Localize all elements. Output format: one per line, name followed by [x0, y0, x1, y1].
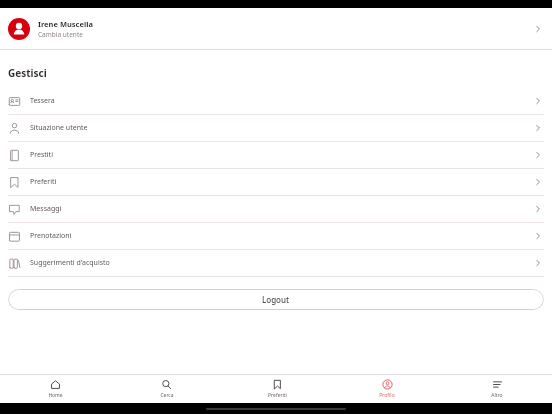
staticText: Preferiti: [30, 177, 57, 187]
other: Apri: [532, 95, 544, 107]
button[interactable]: Prestiti: [0, 142, 552, 168]
button[interactable]: Suggerimenti d'acquisto: [0, 250, 552, 276]
staticText: Prenotazioni: [30, 231, 72, 241]
staticText: Cambia utente: [38, 30, 83, 39]
button[interactable]: Situazione utente: [0, 115, 552, 141]
other: Apri: [532, 149, 544, 161]
other: Apri: [532, 230, 544, 242]
staticText: Cerca: [160, 392, 174, 399]
staticText: Profilo: [379, 392, 395, 399]
staticText: Gestisci: [8, 66, 47, 80]
button[interactable]: Prenotazioni: [0, 223, 552, 249]
staticText: Irene Muscella: [38, 19, 93, 29]
staticText: Tessera: [30, 96, 55, 106]
button[interactable]: Messaggi: [0, 196, 552, 222]
staticText: Altro: [491, 392, 503, 399]
button[interactable]: Profilo: [332, 375, 442, 403]
other: Apri: [532, 23, 544, 35]
button[interactable]: Logout: [8, 289, 544, 310]
staticText: Suggerimenti d'acquisto: [30, 258, 110, 268]
button[interactable]: Irene Muscella: [0, 8, 552, 49]
button[interactable]: Home: [0, 375, 111, 403]
button[interactable]: Preferiti: [222, 375, 332, 403]
other: Apri: [532, 176, 544, 188]
other: Apri: [532, 257, 544, 269]
other: Apri: [532, 203, 544, 215]
other: Apri: [532, 122, 544, 134]
staticText: Messaggi: [30, 204, 62, 214]
button[interactable]: Tessera: [0, 88, 552, 114]
staticText: Preferiti: [268, 392, 287, 399]
staticText: Logout: [262, 294, 290, 305]
staticText: Prestiti: [30, 150, 53, 160]
button[interactable]: Altro: [442, 375, 552, 403]
staticText: Situazione utente: [30, 123, 88, 133]
button[interactable]: Preferiti: [0, 169, 552, 195]
button[interactable]: Cerca: [111, 375, 222, 403]
staticText: Home: [48, 392, 63, 399]
